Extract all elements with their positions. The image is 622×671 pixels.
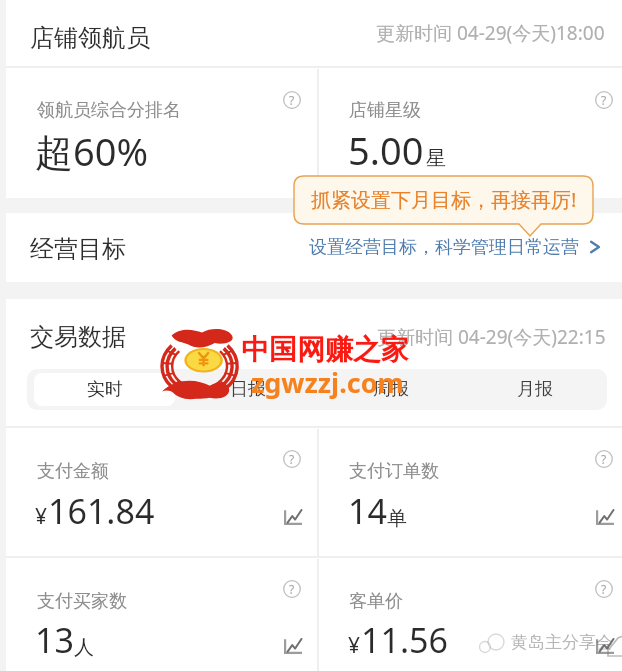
staticText: ? [289,451,295,467]
staticText: 161.84 [48,488,155,534]
staticText: 单 [387,506,407,531]
staticText: 月报 [517,378,553,401]
staticText: 客单价 [349,590,403,613]
staticText: zgwzzj.com [251,364,404,401]
button[interactable]: 周报 [320,373,462,406]
button[interactable] [319,558,622,671]
button[interactable]: 查看趋势图 [284,509,302,525]
button[interactable]: 指标说明 [595,450,613,468]
staticText: ¥ [35,502,48,531]
button[interactable] [6,68,317,197]
staticText: 更新时间 04-29(今天)22:15 [377,324,606,350]
staticText: ? [601,92,607,108]
staticText: 店铺星级 [349,99,421,122]
button[interactable]: 查看趋势图 [596,638,614,654]
staticText: 13 [35,617,74,663]
staticText: 更新时间 04-29(今天)18:00 [376,20,605,46]
button[interactable]: 指标说明 [283,450,301,468]
staticText: 支付金额 [37,460,109,483]
staticText: 店铺领航员 [30,23,150,53]
button[interactable]: 指标说明 [283,91,301,109]
staticText: 设置经营目标，科学管理日常运营 [309,236,579,259]
staticText: 中国网赚之家 [241,332,409,367]
staticText: 领航员综合分排名 [37,99,181,122]
staticText: 支付订单数 [349,460,439,483]
staticText: 11.56 [361,617,448,663]
button[interactable]: 查看趋势图 [596,509,614,525]
staticText: ? [289,92,295,108]
staticText: ? [601,451,607,467]
button[interactable] [319,68,622,197]
staticText: 日报 [230,378,266,401]
staticText: 交易数据 [30,322,126,352]
staticText: 5.00 [348,124,424,176]
button[interactable]: 指标说明 [595,91,613,109]
button[interactable] [6,0,622,66]
button[interactable]: 抓紧设置下月目标，再接再厉! [294,176,593,238]
staticText: 黄岛主分享会 [511,632,613,653]
button[interactable]: 月报 [464,373,606,406]
staticText: 实时 [87,378,123,401]
staticText: 超60% [35,125,149,177]
button[interactable]: 实时 [34,373,175,406]
staticText: 人 [74,635,94,660]
button[interactable]: 设置经营目标，科学管理日常运营 [309,231,602,263]
staticText: 经营目标 [30,234,126,264]
staticText: ¥ [348,631,361,660]
button[interactable]: 查看趋势图 [284,638,302,654]
staticText: 周报 [373,378,409,401]
staticText: 支付买家数 [37,590,127,613]
staticText: 星 [426,146,446,171]
button[interactable] [6,428,317,557]
button[interactable]: 日报 [177,373,318,406]
button[interactable] [6,558,317,671]
staticText: 抓紧设置下月目标，再接再厉! [311,186,577,213]
button[interactable]: 指标说明 [283,580,301,598]
staticText: ? [601,581,607,597]
button[interactable]: 指标说明 [595,580,613,598]
button[interactable] [319,428,622,557]
staticText: 14 [348,488,387,534]
button[interactable] [6,213,622,282]
staticText: ? [289,581,295,597]
